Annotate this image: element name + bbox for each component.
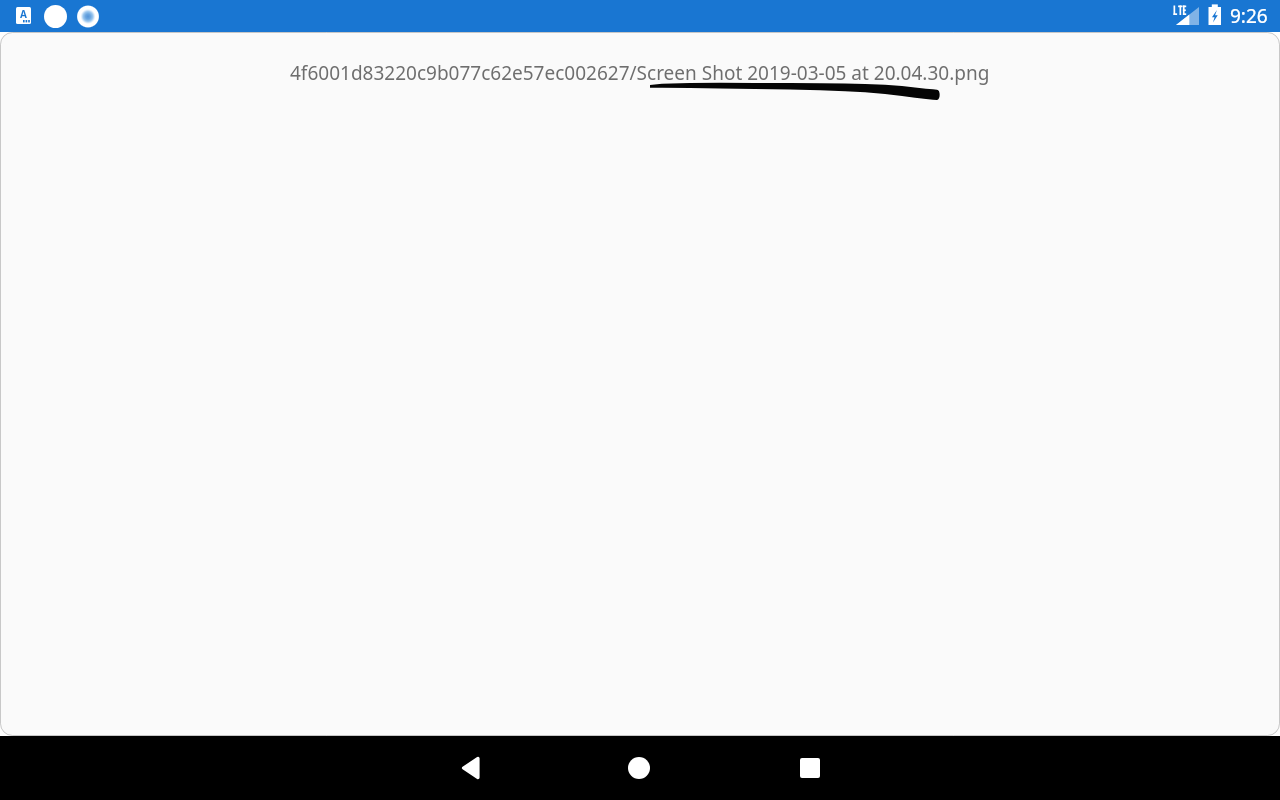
button[interactable]: Home	[607, 736, 671, 800]
button[interactable]: 4f6001d83220c9b077c62e57ec002627/Screen …	[288, 60, 992, 86]
button[interactable]: Drawing canvas	[0, 32, 1280, 736]
staticText: 9:26	[1230, 3, 1268, 29]
button[interactable]: Recent apps	[778, 736, 842, 800]
staticText: 4f6001d83220c9b077c62e57ec002627/Screen …	[290, 60, 990, 86]
button[interactable]: Back	[438, 736, 502, 800]
staticText: A	[20, 7, 27, 19]
